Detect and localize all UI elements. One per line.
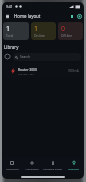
- staticText: Hardware model: [43, 167, 62, 170]
- staticText: Snapshot: [68, 167, 79, 170]
- button[interactable]: Router 3000: [3, 63, 83, 78]
- button[interactable]: 1: [31, 22, 56, 40]
- staticText: 1: [34, 24, 39, 34]
- staticText: Library: [4, 44, 19, 50]
- button[interactable]: Menu: [4, 13, 11, 20]
- staticText: Home layout: [14, 13, 41, 19]
- staticText: Dashboard: [6, 167, 19, 170]
- button[interactable]: Dashboard: [2, 158, 22, 174]
- staticText: On-line: [34, 34, 45, 37]
- staticText: Search: [20, 55, 31, 59]
- button[interactable]: 0: [58, 22, 83, 40]
- staticText: 9:41: [6, 4, 13, 9]
- staticText: Total: [6, 34, 14, 37]
- staticText: 1: [6, 24, 11, 34]
- staticText: 192.168.1.104: [18, 72, 34, 75]
- button[interactable]: 1: [3, 22, 29, 40]
- button[interactable]: Snapshot: [63, 158, 84, 174]
- button[interactable]: Search: [13, 53, 81, 61]
- staticText: Off-line: [61, 34, 73, 37]
- staticText: 3903 mA: [68, 69, 79, 73]
- staticText: Router 3000: [18, 67, 37, 71]
- staticText: Automation: [25, 167, 39, 170]
- staticText: 0: [61, 24, 66, 34]
- button[interactable]: Signal: [69, 13, 75, 19]
- button[interactable]: Hardware model: [42, 158, 63, 174]
- button[interactable]: Filter: [3, 52, 12, 61]
- button[interactable]: Automation: [22, 158, 42, 174]
- button[interactable]: Power: [75, 12, 83, 20]
